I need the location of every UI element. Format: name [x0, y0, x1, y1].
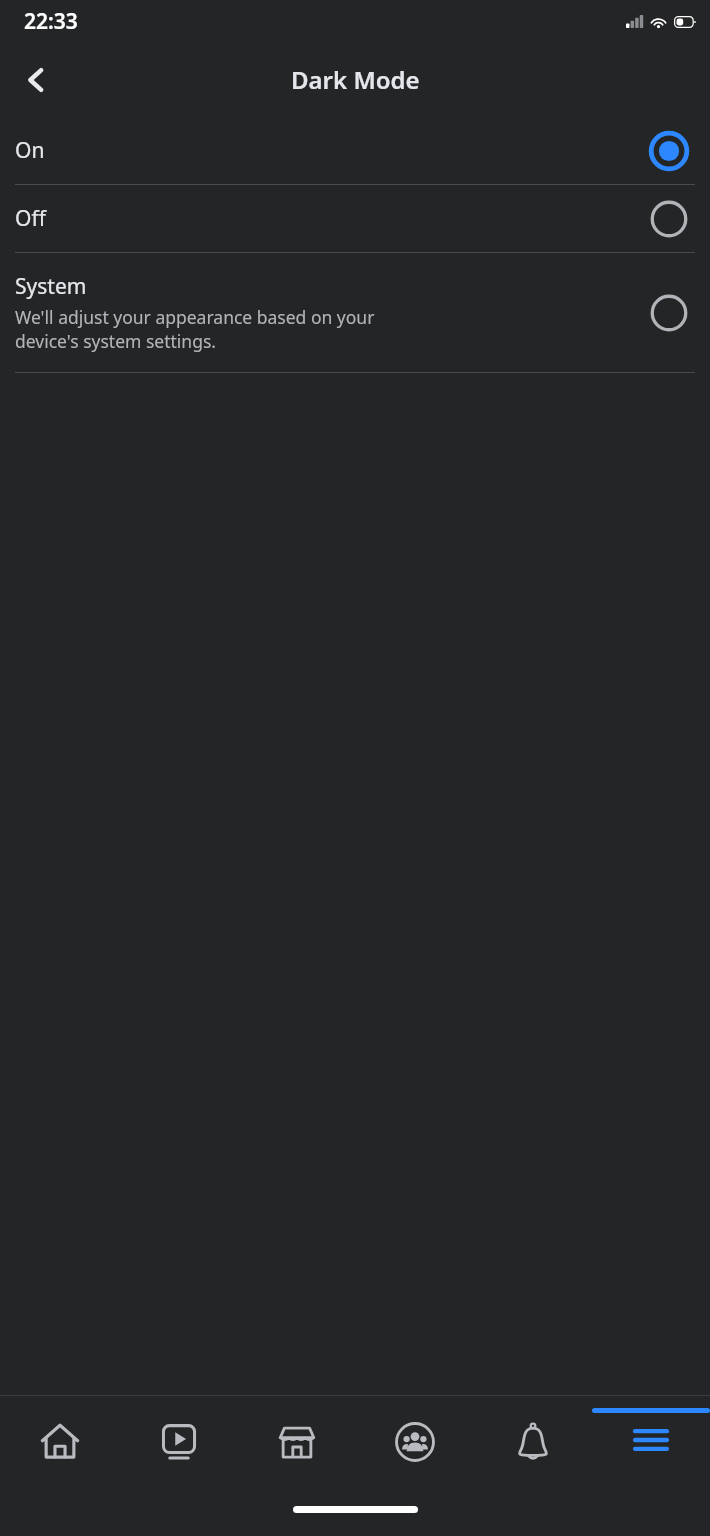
- staticText: On: [15, 136, 45, 165]
- staticText: Off: [15, 204, 46, 233]
- staticText: 22:33: [24, 7, 78, 36]
- button[interactable]: Video: [119, 1395, 238, 1490]
- button[interactable]: On: [0, 117, 710, 185]
- button[interactable]: Menu: [592, 1395, 710, 1490]
- button[interactable]: Notifications: [474, 1395, 592, 1490]
- staticText: System: [15, 272, 87, 301]
- button[interactable]: Marketplace: [238, 1395, 356, 1490]
- button[interactable]: Home: [0, 1395, 119, 1490]
- staticText: We'll adjust your appearance based on yo…: [15, 305, 375, 353]
- staticText: Dark Mode: [291, 63, 420, 96]
- button[interactable]: Back: [8, 52, 64, 108]
- button[interactable]: Groups: [356, 1395, 474, 1490]
- button[interactable]: System: [0, 253, 710, 373]
- button[interactable]: Off: [0, 185, 710, 253]
